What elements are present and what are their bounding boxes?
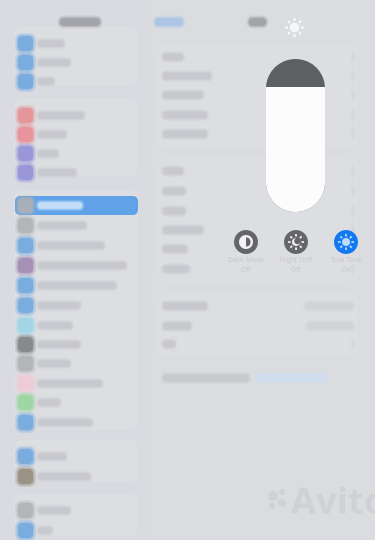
button[interactable]: Night Shift <box>272 230 320 280</box>
button[interactable] <box>15 72 138 91</box>
staticText: Off <box>291 265 301 274</box>
button[interactable] <box>15 53 138 72</box>
button[interactable] <box>15 144 138 163</box>
button[interactable] <box>15 393 138 412</box>
button[interactable] <box>15 521 138 540</box>
button[interactable]: True Tone <box>322 230 370 280</box>
button[interactable] <box>15 196 138 215</box>
staticText: Night Shift <box>279 255 312 264</box>
button[interactable] <box>15 316 138 335</box>
button[interactable] <box>15 354 138 373</box>
button[interactable]: Back to Settings <box>152 11 186 33</box>
staticText: Dark Mode <box>228 255 264 264</box>
button[interactable] <box>15 236 138 255</box>
button[interactable] <box>15 34 138 53</box>
button[interactable] <box>15 413 138 432</box>
button[interactable] <box>15 163 138 182</box>
staticText: Avito <box>291 476 375 524</box>
staticText: On <box>341 265 350 274</box>
button[interactable] <box>15 216 138 235</box>
staticText: Off <box>241 265 251 274</box>
button[interactable]: Dark Mode <box>222 230 270 280</box>
button[interactable] <box>15 125 138 144</box>
button[interactable] <box>15 374 138 393</box>
button[interactable] <box>15 335 138 354</box>
button[interactable] <box>15 276 138 295</box>
button[interactable] <box>15 106 138 125</box>
button[interactable] <box>15 296 138 315</box>
button[interactable] <box>15 467 138 486</box>
button[interactable] <box>15 447 138 466</box>
staticText: True Tone <box>330 255 361 264</box>
button[interactable] <box>15 256 138 275</box>
button[interactable] <box>15 501 138 520</box>
